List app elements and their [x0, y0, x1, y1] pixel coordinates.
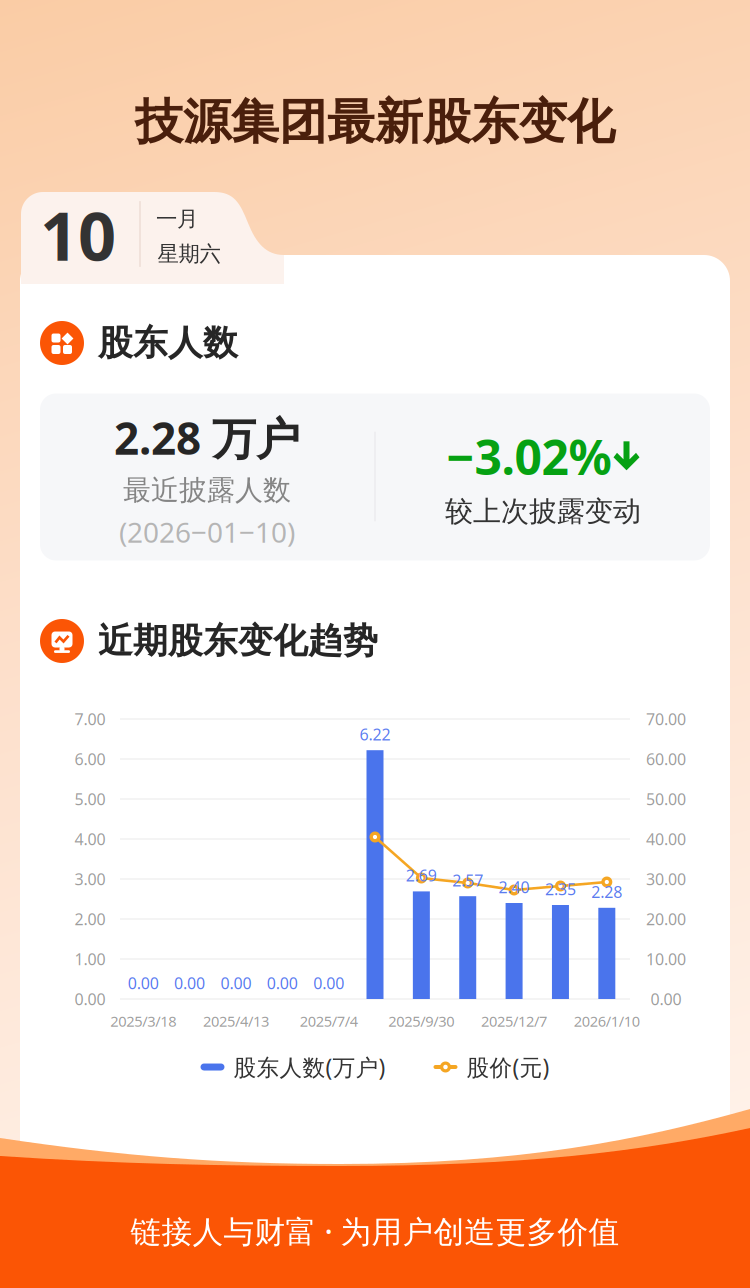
staticText: 股东人数(万户): [233, 1052, 385, 1082]
staticText: 0.00: [174, 972, 205, 994]
staticText: 0.00: [313, 972, 344, 994]
staticText: 0.00: [267, 972, 298, 994]
staticText: 2025/4/13: [203, 1011, 269, 1031]
staticText: 20.00: [646, 908, 686, 930]
staticText: 2.57: [452, 870, 483, 891]
staticText: 2025/7/4: [300, 1011, 358, 1031]
staticText: 60.00: [646, 748, 686, 770]
staticText: 0.00: [220, 972, 251, 994]
staticText: 0.00: [128, 972, 159, 994]
staticText: 1.00: [74, 948, 105, 970]
staticText: 2.40: [499, 876, 530, 898]
staticText: 2025/12/7: [481, 1011, 547, 1031]
staticText: 2026/1/10: [574, 1011, 640, 1031]
staticText: (2026−01−10): [119, 513, 295, 550]
staticText: 2.28 万户: [114, 408, 300, 467]
staticText: 近期股东变化趋势: [98, 620, 378, 662]
staticText: 6.22: [359, 724, 390, 745]
staticText: 6.00: [74, 748, 105, 770]
staticText: 0.00: [74, 988, 105, 1010]
staticText: 10.00: [646, 948, 686, 970]
staticText: 一月: [156, 206, 198, 232]
staticText: 4.00: [74, 828, 105, 850]
staticText: 2.28: [591, 881, 622, 902]
staticText: 30.00: [646, 868, 686, 890]
staticText: 2025/9/30: [388, 1011, 454, 1031]
staticText: 0.00: [650, 988, 681, 1010]
staticText: 2.35: [545, 878, 576, 900]
staticText: 5.00: [74, 788, 105, 810]
staticText: 40.00: [646, 828, 686, 850]
staticText: 7.00: [74, 708, 105, 730]
staticText: −3.02%: [446, 424, 611, 488]
staticText: 3.00: [74, 868, 105, 890]
staticText: 2.00: [74, 908, 105, 930]
staticText: 技源集团最新股东变化: [135, 92, 615, 151]
staticText: 链接人与财富 · 为用户创造更多价值: [130, 1211, 619, 1251]
staticText: 2.69: [406, 865, 437, 886]
staticText: 最近披露人数: [123, 473, 291, 507]
staticText: 10: [40, 191, 116, 279]
staticText: 股东人数: [98, 322, 238, 364]
staticText: 70.00: [646, 708, 686, 730]
staticText: 股价(元): [466, 1052, 549, 1082]
staticText: 星期六: [157, 241, 220, 267]
staticText: 2025/3/18: [110, 1011, 176, 1031]
staticText: 50.00: [646, 788, 686, 810]
staticText: 较上次披露变动: [445, 494, 641, 529]
